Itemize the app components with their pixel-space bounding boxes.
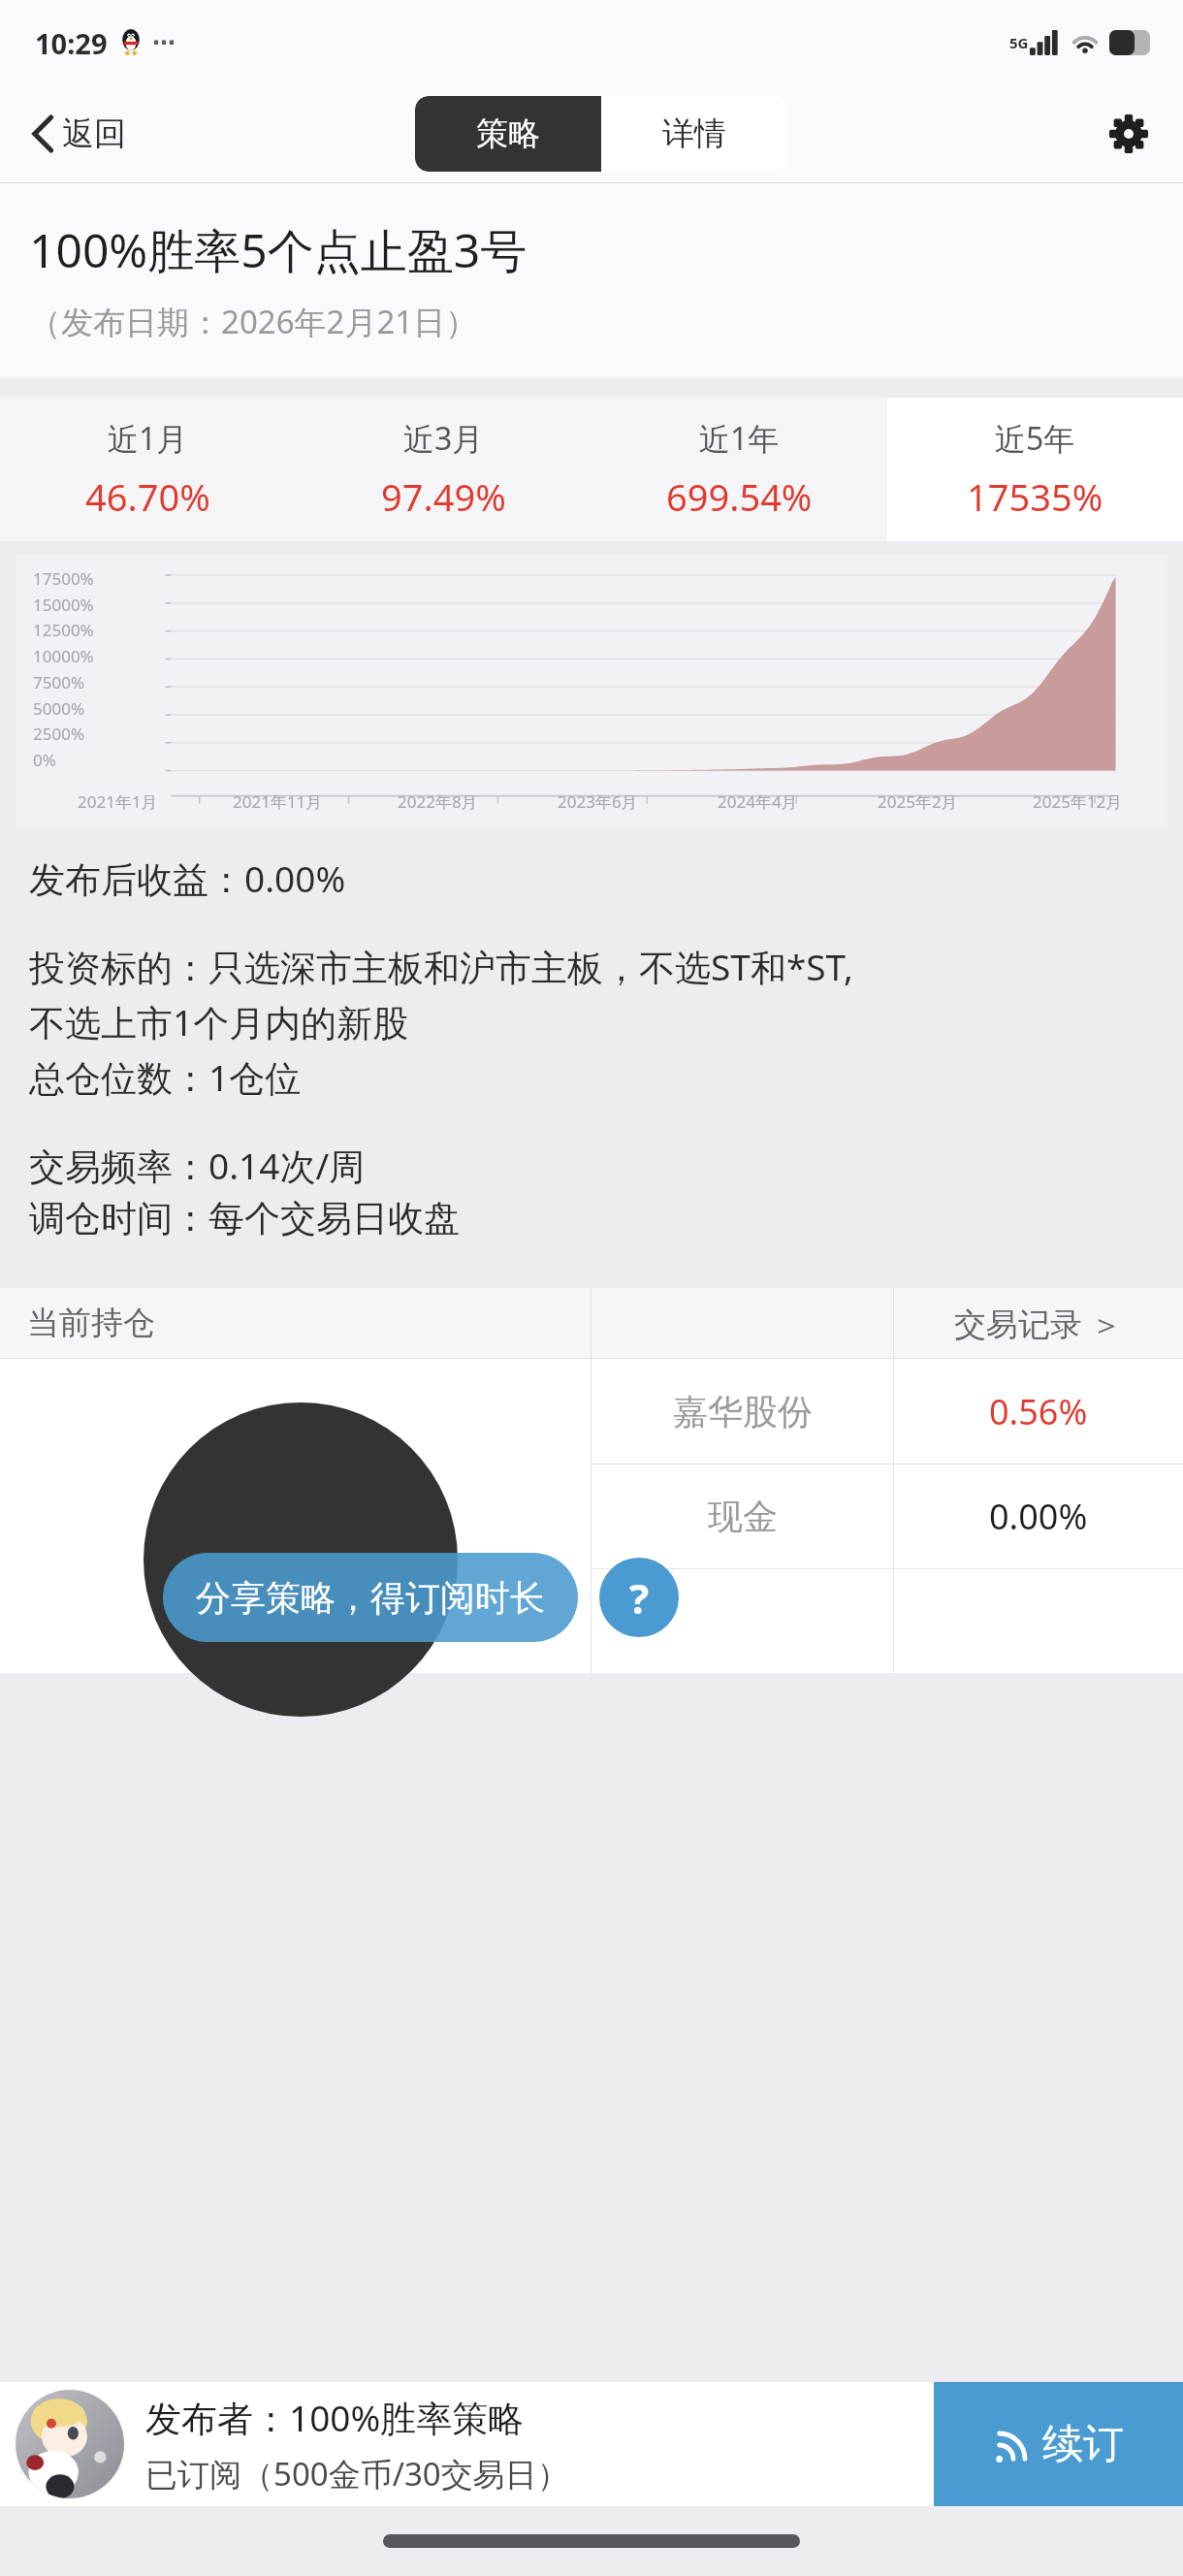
staticText: 交易记录 ＞ (954, 1302, 1123, 1345)
staticText: ? (629, 1570, 650, 1626)
staticText: 发布者：100%胜率策略 (145, 2393, 525, 2442)
staticText: 近1年 (699, 417, 780, 460)
staticText: 12500% (33, 619, 94, 641)
staticText: 近1月 (108, 417, 188, 460)
button[interactable]: 返回 (27, 106, 132, 162)
staticText: 699.54% (666, 471, 813, 522)
staticText: 嘉华股份 (673, 1390, 813, 1433)
staticText: 15000% (33, 594, 94, 616)
staticText: 详情 (662, 113, 726, 154)
staticText: 2023年6月 (558, 790, 638, 813)
button[interactable]: 续订 (934, 2382, 1183, 2506)
staticText: 10000% (33, 645, 94, 667)
staticText: 现金 (708, 1495, 778, 1538)
staticText: 近3月 (403, 417, 484, 460)
staticText: 策略 (476, 113, 540, 154)
staticText: 7500% (33, 671, 85, 693)
button[interactable]: Settings (1102, 107, 1156, 161)
staticText: 0.00% (989, 1493, 1088, 1540)
staticText: 2500% (33, 723, 85, 745)
staticText: 10:29 (35, 24, 108, 62)
staticText: 17535% (967, 471, 1103, 522)
staticText: （发布日期：2026年2月21日） (29, 300, 478, 343)
staticText: 不选上市1个月内的新股 (29, 997, 409, 1046)
staticText: 0.56% (989, 1388, 1088, 1435)
staticText: 97.49% (381, 471, 506, 522)
button[interactable]: 近5年 (887, 398, 1183, 541)
staticText: 17500% (33, 567, 94, 590)
staticText: 投资标的：只选深市主板和沪市主板，不选ST和*ST, (29, 942, 853, 991)
staticText: 续订 (1042, 2419, 1124, 2470)
staticText: 调仓时间：每个交易日收盘 (29, 1196, 460, 1241)
staticText: 近5年 (995, 417, 1075, 460)
staticText: 2025年12月 (1033, 790, 1123, 813)
staticText: 总仓位数：1仓位 (29, 1052, 302, 1102)
button[interactable]: 分享策略，得订阅时长 (163, 1553, 578, 1642)
button[interactable]: Help (599, 1558, 679, 1637)
staticText: 2024年4月 (718, 790, 798, 813)
staticText: 100%胜率5个点止盈3号 (29, 218, 528, 282)
staticText: 2022年8月 (398, 790, 478, 813)
staticText: 返回 (62, 113, 126, 154)
button[interactable]: 近1月 (0, 398, 296, 541)
staticText: 2021年11月 (233, 790, 323, 813)
button[interactable]: 发布者：100%胜率策略 (0, 2382, 934, 2506)
button[interactable]: 近3月 (296, 398, 591, 541)
button[interactable]: 详情 (601, 96, 787, 172)
staticText: 2021年1月 (78, 790, 158, 813)
button[interactable]: 近1年 (591, 398, 887, 541)
button[interactable]: 策略 (415, 96, 601, 172)
button[interactable]: 交易记录 ＞ (894, 1288, 1183, 1358)
staticText: 46.70% (85, 471, 210, 522)
staticText: 2025年2月 (878, 790, 958, 813)
staticText: 交易频率：0.14次/周 (29, 1141, 366, 1190)
staticText: 当前持仓 (27, 1303, 155, 1343)
staticText: 已订阅（500金币/30交易日） (145, 2452, 569, 2495)
staticText: 0% (33, 749, 56, 771)
staticText: 5G (1009, 33, 1029, 52)
staticText: 5000% (33, 697, 85, 720)
staticText: 分享策略，得订阅时长 (196, 1576, 545, 1620)
staticText: ⋯ (152, 29, 176, 56)
staticText: 发布后收益：0.00% (29, 853, 346, 903)
